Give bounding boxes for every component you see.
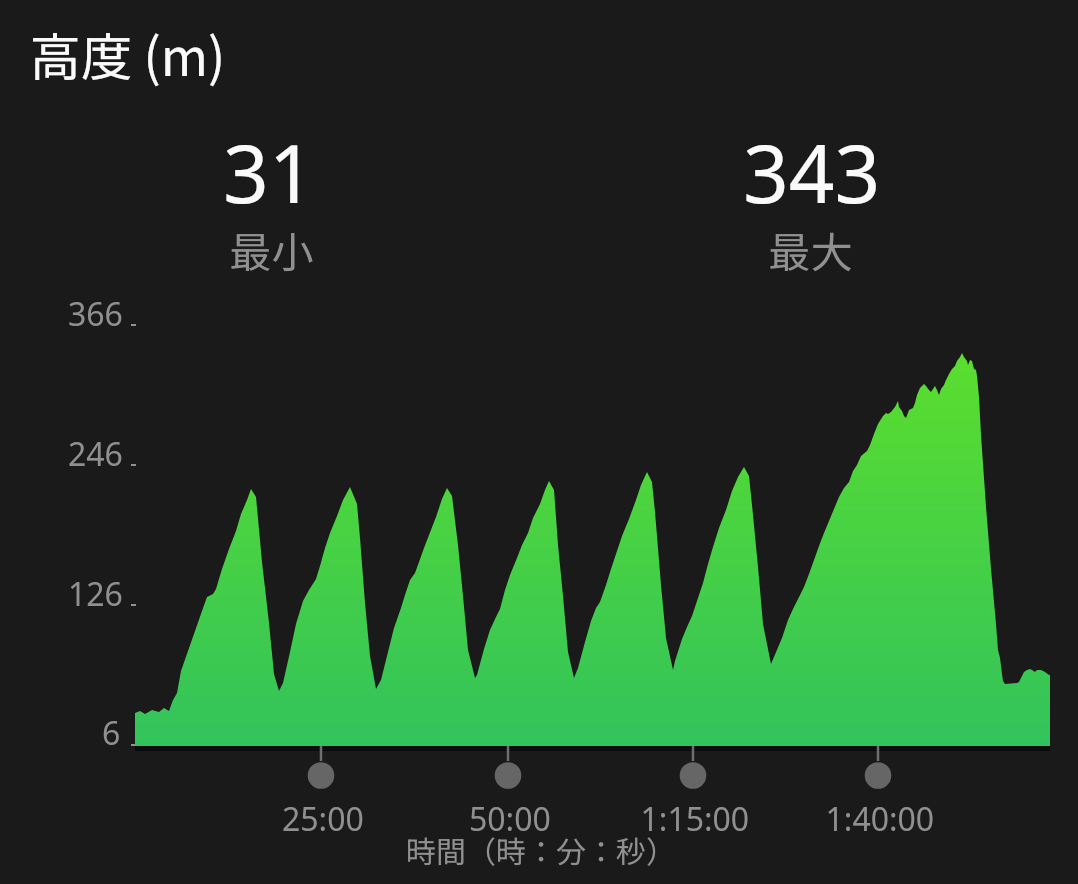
button[interactable]: 25:00 <box>291 755 351 797</box>
button[interactable]: 高度 (m) <box>0 0 260 95</box>
button[interactable]: 最小 31 m <box>150 110 400 270</box>
button[interactable]: 1:40:00 <box>848 755 908 797</box>
button[interactable]: 1:15:00 <box>663 755 723 797</box>
button[interactable]: 50:00 <box>478 755 538 797</box>
button[interactable]: 高度グラフ <box>135 290 1050 750</box>
button[interactable]: 最大 343 m <box>690 110 940 270</box>
